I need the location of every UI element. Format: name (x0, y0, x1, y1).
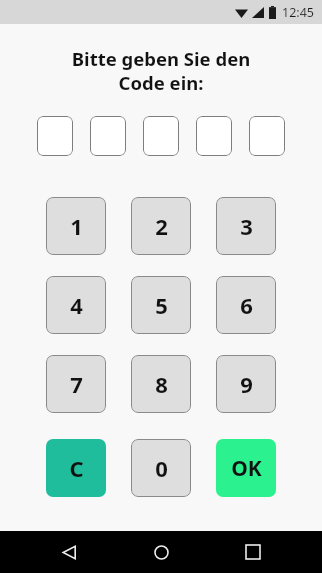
staticText: 6 (240, 290, 253, 320)
button[interactable]: 9 (216, 355, 276, 413)
button[interactable]: 6 (216, 276, 276, 334)
staticText: 2 (155, 211, 168, 241)
button[interactable]: 0 (131, 439, 191, 497)
staticText: 8 (155, 369, 168, 399)
button[interactable]: Back (48, 531, 90, 573)
staticText: 9 (240, 369, 253, 399)
button[interactable]: Code digit 2 (90, 116, 126, 156)
button[interactable]: 7 (46, 355, 106, 413)
button[interactable]: Home (140, 531, 182, 573)
button[interactable]: 4 (46, 276, 106, 334)
button[interactable]: 2 (131, 197, 191, 255)
staticText: 12:45 (282, 4, 314, 21)
button[interactable]: Code digit 4 (196, 116, 232, 156)
button[interactable]: Recent apps (232, 531, 274, 573)
button[interactable]: 5 (131, 276, 191, 334)
staticText: 3 (240, 211, 253, 241)
button[interactable]: Code digit 5 (249, 116, 285, 156)
staticText: 0 (155, 453, 168, 483)
staticText: C (69, 453, 84, 483)
button[interactable]: Code digit 1 (37, 116, 73, 156)
staticText: 1 (70, 211, 83, 241)
button[interactable]: 3 (216, 197, 276, 255)
button[interactable]: C (46, 439, 106, 497)
staticText: 4 (70, 290, 83, 320)
button[interactable]: 1 (46, 197, 106, 255)
staticText: 5 (155, 290, 168, 320)
button[interactable]: Code digit 3 (143, 116, 179, 156)
button[interactable]: 8 (131, 355, 191, 413)
staticText: Bitte geben Sie den Code ein: (30, 46, 292, 95)
staticText: OK (231, 454, 262, 483)
staticText: 7 (70, 369, 83, 399)
button[interactable]: OK (216, 439, 276, 497)
